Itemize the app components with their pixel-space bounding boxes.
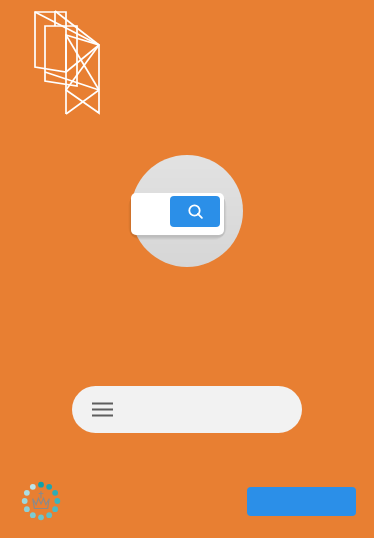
button[interactable]: Continue xyxy=(247,487,356,516)
button[interactable]: Search xyxy=(170,196,220,227)
button[interactable]: Menu xyxy=(72,386,302,433)
